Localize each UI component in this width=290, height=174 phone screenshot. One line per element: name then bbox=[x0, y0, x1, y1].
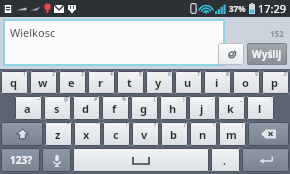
button[interactable]: g bbox=[131, 96, 158, 120]
button[interactable]: w bbox=[30, 71, 57, 94]
button[interactable]: e bbox=[59, 71, 86, 94]
staticText: m bbox=[226, 127, 237, 142]
staticText: v bbox=[141, 127, 148, 142]
button[interactable]: t bbox=[117, 71, 144, 94]
staticText: 2 bbox=[52, 71, 55, 78]
staticText: ? bbox=[154, 122, 157, 129]
staticText: 0 bbox=[284, 71, 287, 78]
staticText: \ bbox=[213, 122, 215, 129]
button[interactable]: 123? bbox=[1, 148, 40, 172]
button[interactable]: h bbox=[160, 96, 187, 120]
staticText: q bbox=[10, 75, 17, 90]
staticText: 9 bbox=[255, 71, 258, 78]
button[interactable]: k bbox=[218, 96, 245, 120]
staticText: 17:29 bbox=[258, 1, 287, 16]
staticText: b bbox=[170, 127, 177, 142]
staticText: l bbox=[258, 101, 262, 116]
button[interactable]: j bbox=[189, 96, 216, 120]
staticText: # bbox=[94, 96, 98, 103]
staticText: " bbox=[67, 122, 70, 129]
staticText: k bbox=[227, 101, 234, 116]
staticText: : bbox=[270, 96, 272, 103]
button[interactable]: x bbox=[74, 122, 101, 146]
button[interactable]: m bbox=[219, 122, 246, 146]
staticText: o bbox=[242, 75, 249, 90]
button[interactable]: u bbox=[175, 71, 202, 94]
staticText: f bbox=[112, 101, 117, 116]
staticText: y bbox=[155, 75, 162, 90]
button[interactable]: y bbox=[146, 71, 173, 94]
staticText: e bbox=[68, 75, 75, 90]
button[interactable]: n bbox=[190, 122, 217, 146]
staticText: _ bbox=[240, 96, 243, 103]
button[interactable]: Shift bbox=[1, 122, 43, 146]
button[interactable]: q bbox=[1, 71, 28, 94]
staticText: 8 bbox=[226, 71, 229, 78]
button[interactable]: Attach bbox=[218, 43, 244, 65]
staticText: ; bbox=[242, 122, 244, 129]
staticText: / bbox=[184, 122, 186, 129]
staticText: Wielkosc bbox=[10, 25, 56, 40]
button[interactable]: b bbox=[161, 122, 188, 146]
staticText: 123? bbox=[10, 153, 32, 167]
button[interactable]: s bbox=[44, 96, 71, 120]
button[interactable]: Space bbox=[73, 148, 209, 172]
button[interactable]: c bbox=[103, 122, 130, 146]
button[interactable]: Wielkosc bbox=[3, 19, 225, 66]
button[interactable]: o bbox=[233, 71, 260, 94]
button[interactable]: a bbox=[15, 96, 42, 120]
button[interactable]: f bbox=[102, 96, 129, 120]
staticText: . bbox=[223, 153, 227, 168]
staticText: 6 bbox=[168, 71, 171, 78]
staticText: t bbox=[127, 75, 132, 90]
staticText: i bbox=[215, 75, 219, 90]
button[interactable]: Voice input bbox=[42, 148, 71, 172]
staticText: d bbox=[82, 101, 89, 116]
button[interactable]: z bbox=[45, 122, 72, 146]
button[interactable]: . bbox=[211, 148, 240, 172]
staticText: 3 bbox=[81, 71, 84, 78]
staticText: - bbox=[212, 96, 214, 103]
staticText: n bbox=[199, 127, 207, 142]
staticText: ~ bbox=[37, 96, 40, 103]
staticText: j bbox=[200, 101, 204, 116]
staticText: ! bbox=[126, 122, 128, 129]
button[interactable]: i bbox=[204, 71, 231, 94]
staticText: @ bbox=[64, 96, 69, 103]
staticText: x bbox=[83, 127, 90, 142]
staticText: g bbox=[140, 101, 147, 116]
staticText: ' bbox=[97, 122, 99, 129]
staticText: a bbox=[24, 101, 31, 116]
staticText: 7 bbox=[197, 71, 200, 78]
button[interactable]: v bbox=[132, 122, 159, 146]
staticText: u bbox=[184, 75, 192, 90]
button[interactable]: Backspace bbox=[248, 122, 289, 146]
staticText: ) bbox=[183, 96, 185, 103]
staticText: h bbox=[169, 101, 177, 116]
staticText: 152 bbox=[270, 28, 284, 39]
staticText: r bbox=[98, 75, 103, 90]
staticText: % bbox=[122, 96, 127, 103]
button[interactable]: p bbox=[262, 71, 289, 94]
button[interactable]: r bbox=[88, 71, 115, 94]
staticText: z bbox=[55, 127, 61, 142]
button[interactable]: Wyślij bbox=[247, 43, 287, 65]
staticText: Wyślij bbox=[252, 47, 282, 61]
staticText: s bbox=[54, 101, 60, 116]
staticText: 37% bbox=[229, 3, 246, 14]
staticText: w bbox=[38, 75, 48, 90]
staticText: c bbox=[113, 127, 119, 142]
staticText: 5 bbox=[139, 71, 142, 78]
button[interactable]: Enter bbox=[242, 148, 289, 172]
button[interactable]: l bbox=[247, 96, 274, 120]
staticText: 4 bbox=[110, 71, 113, 78]
staticText: 1 bbox=[23, 71, 26, 78]
staticText: ( bbox=[154, 96, 156, 103]
staticText: p bbox=[271, 75, 278, 90]
button[interactable]: d bbox=[73, 96, 100, 120]
